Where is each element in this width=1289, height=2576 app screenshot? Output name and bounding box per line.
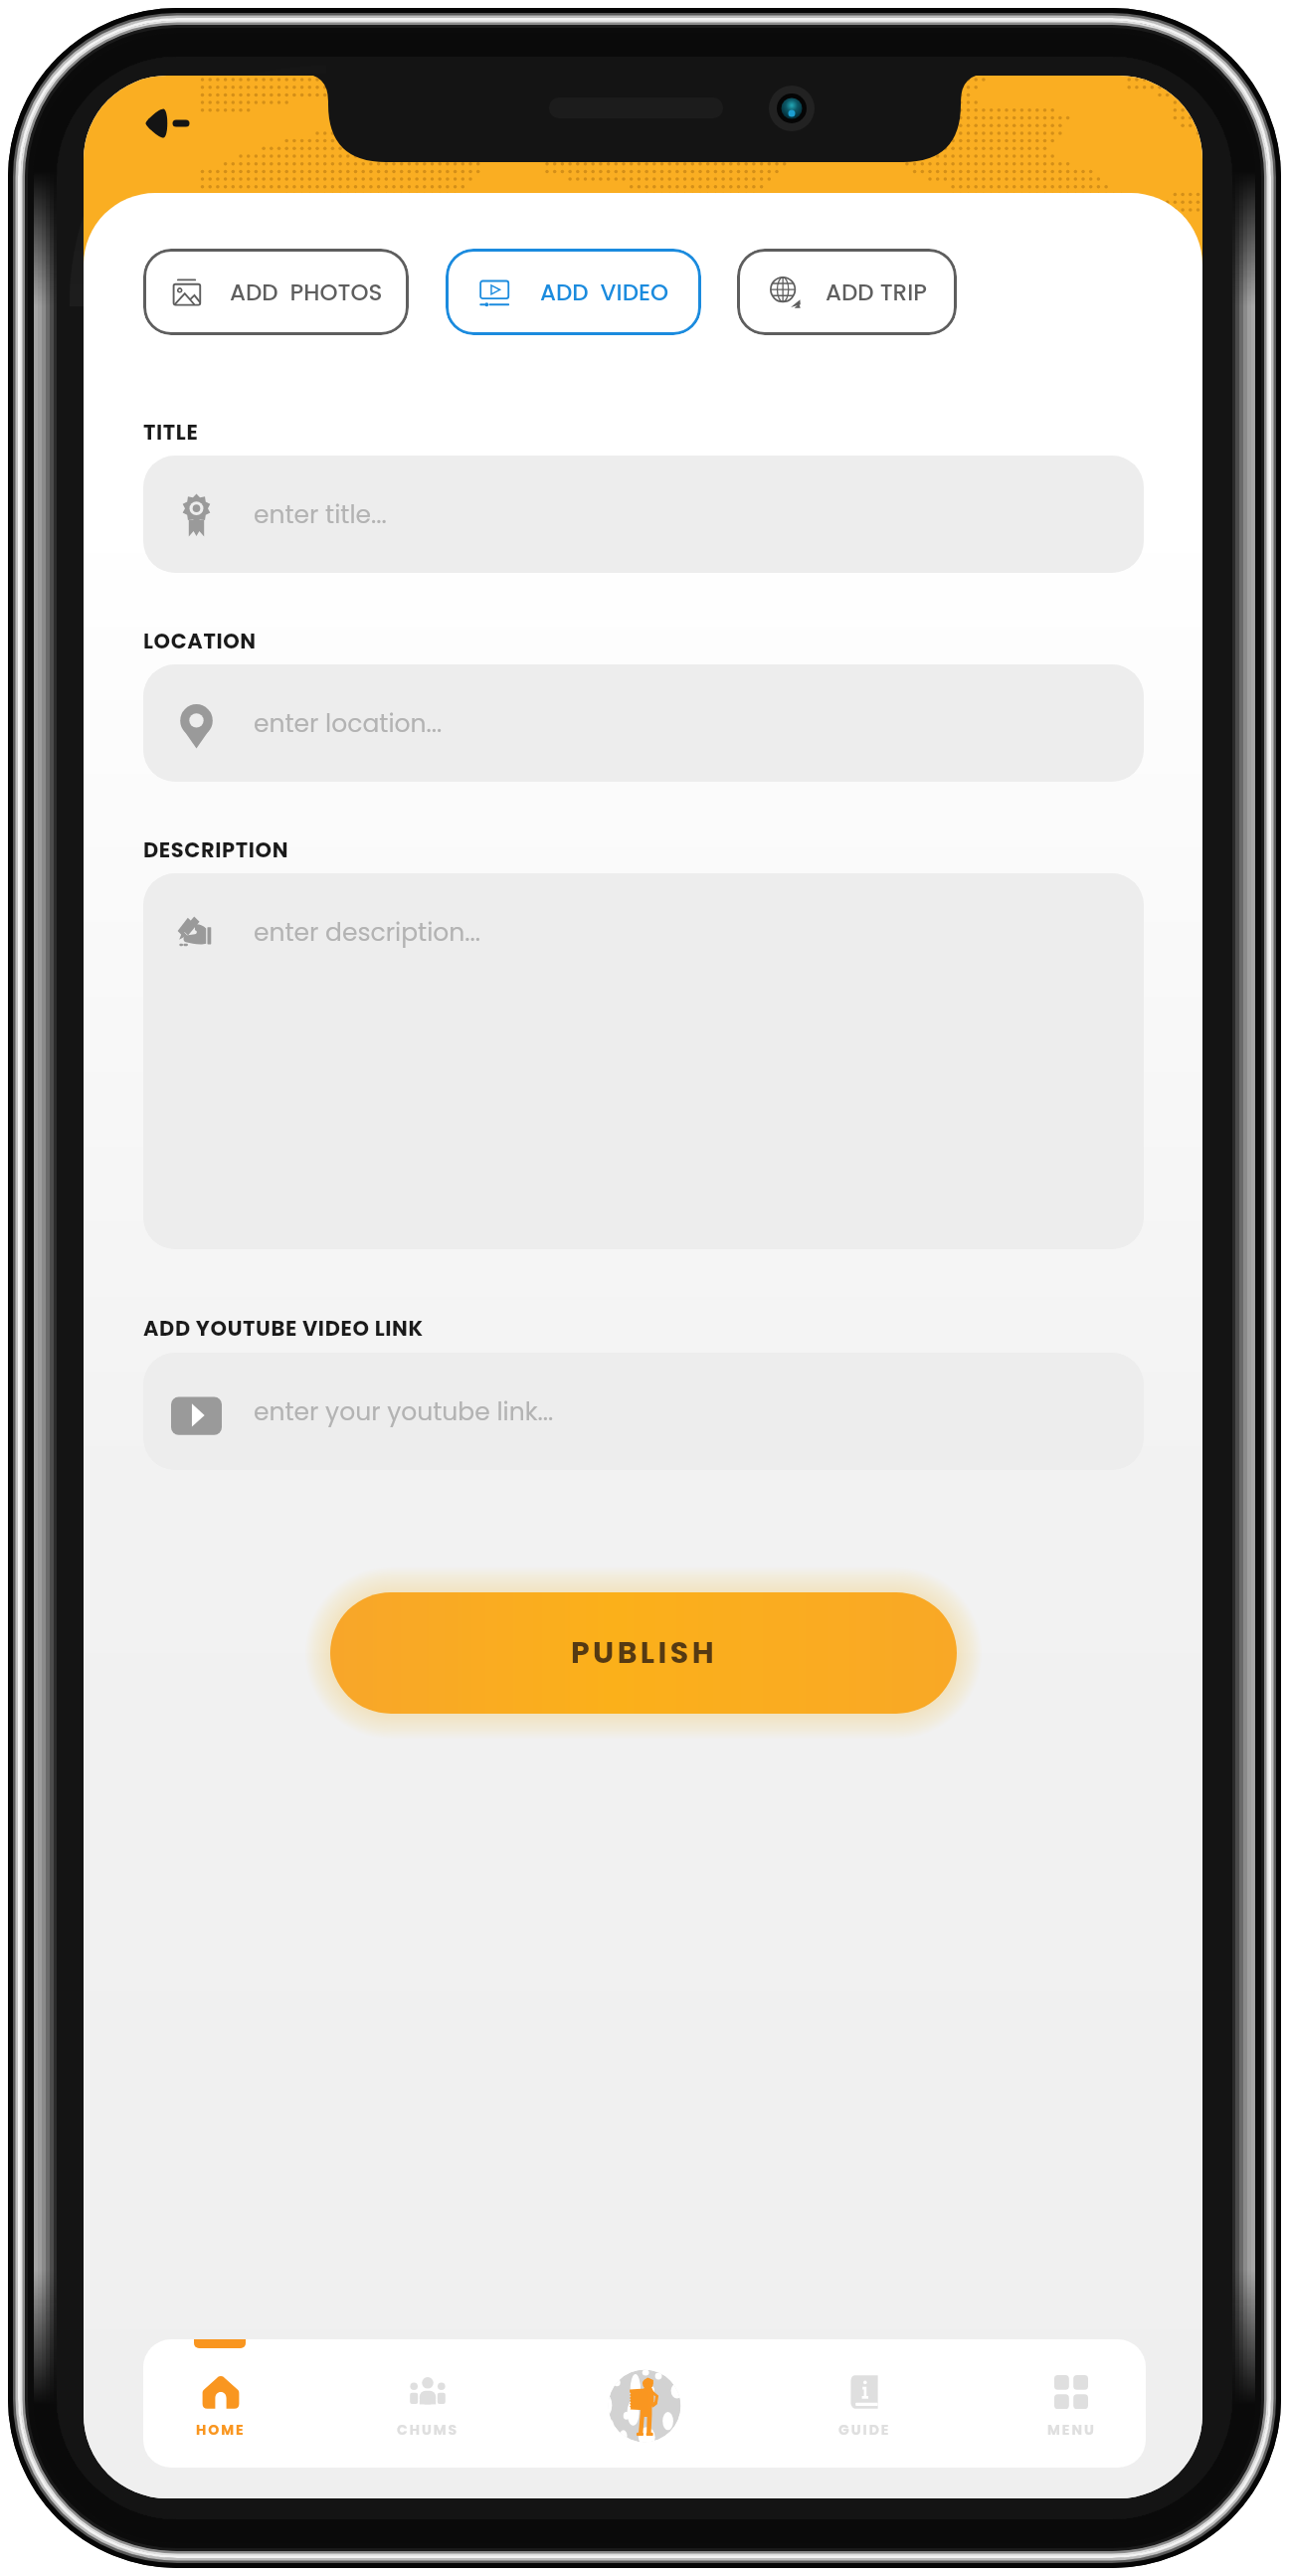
button[interactable]: HOME — [161, 2339, 280, 2468]
button[interactable]: enter location... — [143, 664, 1144, 782]
staticText: enter description... — [254, 915, 481, 950]
button[interactable]: GUIDE — [805, 2339, 924, 2468]
staticText: enter location... — [254, 706, 443, 741]
staticText: DESCRIPTION — [143, 835, 289, 864]
staticText: ADD TRIP — [826, 276, 927, 308]
staticText: TITLE — [143, 418, 199, 447]
button[interactable]: ADD TRIP — [737, 249, 957, 335]
staticText: ADD VIDEO — [540, 276, 669, 308]
staticText: HOME — [196, 2420, 246, 2440]
button[interactable]: enter your youtube link... — [143, 1353, 1144, 1470]
staticText: PUBLISH — [571, 1632, 717, 1674]
button[interactable]: ADD PHOTOS — [143, 249, 409, 335]
button[interactable]: Back — [135, 90, 203, 157]
staticText: LOCATION — [143, 627, 257, 655]
staticText: enter title... — [254, 497, 387, 532]
button[interactable]: ADD VIDEO — [446, 249, 701, 335]
staticText: enter your youtube link... — [254, 1394, 554, 1429]
button[interactable]: Explore — [585, 2339, 704, 2468]
button[interactable]: enter title... — [143, 456, 1144, 573]
staticText: MENU — [1047, 2420, 1096, 2440]
staticText: GUIDE — [838, 2420, 891, 2440]
button[interactable]: enter description... — [143, 873, 1144, 1249]
staticText: CHUMS — [397, 2420, 460, 2440]
button[interactable]: MENU — [1012, 2339, 1131, 2468]
staticText: ADD YOUTUBE VIDEO LINK — [143, 1314, 424, 1343]
button[interactable]: CHUMS — [368, 2339, 487, 2468]
staticText: ADD PHOTOS — [230, 276, 383, 308]
button[interactable]: PUBLISH — [330, 1592, 957, 1714]
